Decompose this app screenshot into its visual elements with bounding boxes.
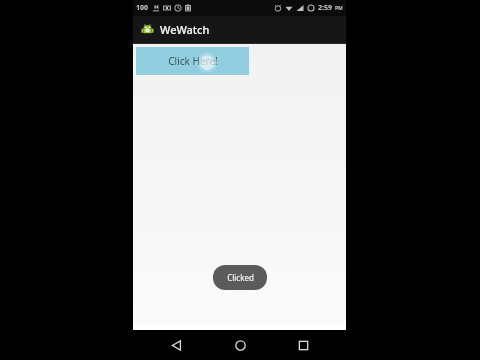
staticText: PM <box>335 5 343 12</box>
staticText: 2:59 <box>318 3 332 13</box>
staticText: Click Here! <box>168 54 218 68</box>
button[interactable]: Back <box>156 330 196 360</box>
staticText: Clicked <box>227 272 254 283</box>
button[interactable]: Home <box>220 330 260 360</box>
staticText: 100 <box>136 3 149 13</box>
staticText: WeWatch <box>160 22 210 37</box>
button[interactable]: Click Here! <box>136 47 249 75</box>
button[interactable]: Recent apps <box>283 330 323 360</box>
